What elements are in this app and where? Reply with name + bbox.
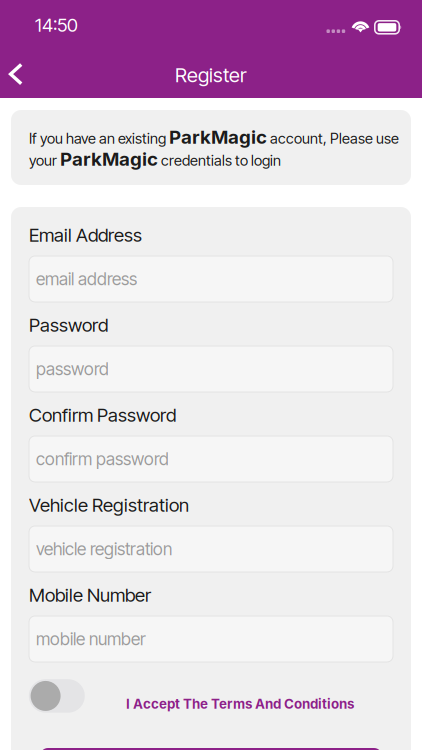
button[interactable]: I Accept The Terms And Conditions	[120, 691, 360, 717]
staticText: If you have an existing ParkMagic accoun…	[29, 126, 399, 170]
staticText: Email Address	[29, 224, 142, 246]
staticText: confirm password	[36, 448, 169, 469]
staticText: Mobile Number	[29, 584, 151, 606]
staticText: I Accept The Terms And Conditions	[126, 696, 354, 712]
button[interactable]: I accept the terms and conditions	[29, 679, 85, 713]
staticText: vehicle registration	[36, 538, 172, 559]
staticText: Password	[29, 314, 108, 336]
staticText: Confirm Password	[29, 404, 176, 426]
staticText: email address	[36, 268, 137, 289]
staticText: 14:50	[35, 14, 78, 36]
staticText: Vehicle Registration	[29, 494, 189, 516]
staticText: password	[36, 358, 109, 379]
staticText: Register	[175, 63, 247, 87]
button[interactable]: Register	[40, 748, 382, 750]
staticText: mobile number	[36, 628, 146, 649]
button[interactable]: Back	[0, 53, 35, 95]
